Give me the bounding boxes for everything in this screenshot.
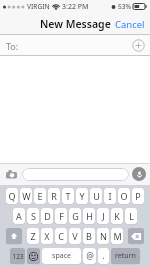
- button[interactable]: J: [97, 208, 109, 224]
- staticText: M: [113, 230, 122, 242]
- button[interactable]: M: [111, 228, 123, 244]
- staticText: 3:22 PM: [62, 2, 89, 12]
- button[interactable]: [128, 228, 144, 244]
- staticText: N: [100, 230, 107, 242]
- button[interactable]: X: [41, 228, 53, 244]
- button[interactable]: P: [132, 188, 144, 204]
- staticText: D: [44, 210, 51, 222]
- staticText: Cancel: [115, 18, 145, 31]
- button[interactable]: L: [125, 208, 137, 224]
- staticText: C: [58, 230, 64, 242]
- staticText: I: [108, 190, 112, 202]
- button[interactable]: [22, 168, 129, 181]
- button[interactable]: [6, 228, 22, 244]
- button[interactable]: F: [55, 208, 67, 224]
- staticText: G: [72, 210, 79, 222]
- button[interactable]: To:: [0, 35, 150, 56]
- button[interactable]: Cancel: [110, 13, 150, 35]
- staticText: Y: [79, 190, 85, 202]
- button[interactable]: U: [90, 188, 102, 204]
- button[interactable]: Y: [76, 188, 88, 204]
- staticText: J: [102, 210, 105, 222]
- button[interactable]: V: [69, 228, 81, 244]
- button[interactable]: E: [34, 188, 46, 204]
- staticText: A: [16, 210, 22, 222]
- staticText: To:: [6, 40, 19, 52]
- staticText: U: [93, 190, 100, 202]
- staticText: .: [102, 250, 105, 262]
- button[interactable]: A: [13, 208, 25, 224]
- button[interactable]: Add contact: [132, 39, 145, 52]
- staticText: @: [86, 250, 94, 262]
- button[interactable]: @: [83, 248, 96, 264]
- button[interactable]: space: [42, 248, 81, 264]
- button[interactable]: T: [62, 188, 74, 204]
- staticText: K: [114, 210, 120, 222]
- staticText: T: [65, 190, 71, 202]
- button[interactable]: [27, 248, 40, 264]
- staticText: E: [37, 190, 43, 202]
- staticText: VIRGIN: [27, 2, 50, 11]
- button[interactable]: D: [41, 208, 53, 224]
- button[interactable]: 123: [10, 248, 25, 264]
- staticText: space: [52, 251, 71, 261]
- staticText: 123: [12, 252, 24, 261]
- staticText: X: [44, 230, 50, 242]
- staticText: 53%: [118, 2, 131, 11]
- staticText: Z: [30, 230, 36, 242]
- staticText: Q: [8, 190, 16, 202]
- staticText: R: [51, 190, 57, 202]
- staticText: V: [72, 230, 78, 242]
- staticText: W: [22, 190, 31, 202]
- button[interactable]: W: [20, 188, 32, 204]
- button[interactable]: Z: [27, 228, 39, 244]
- staticText: P: [135, 190, 141, 202]
- staticText: L: [129, 210, 134, 222]
- staticText: O: [120, 190, 128, 202]
- button[interactable]: N: [97, 228, 109, 244]
- button[interactable]: R: [48, 188, 60, 204]
- button[interactable]: G: [69, 208, 81, 224]
- button[interactable]: B: [83, 228, 95, 244]
- button[interactable]: Record audio: [132, 167, 146, 181]
- button[interactable]: O: [118, 188, 130, 204]
- staticText: return: [115, 251, 136, 261]
- button[interactable]: Q: [6, 188, 18, 204]
- button[interactable]: .: [98, 248, 109, 264]
- staticText: B: [86, 230, 92, 242]
- button[interactable]: I: [104, 188, 116, 204]
- button[interactable]: K: [111, 208, 123, 224]
- staticText: F: [59, 210, 64, 222]
- staticText: S: [31, 210, 36, 222]
- button[interactable]: return: [111, 248, 140, 264]
- button[interactable]: C: [55, 228, 67, 244]
- button[interactable]: S: [27, 208, 39, 224]
- button[interactable]: H: [83, 208, 95, 224]
- staticText: New Message: [40, 17, 111, 31]
- staticText: H: [86, 210, 93, 222]
- button[interactable]: Camera: [4, 167, 19, 182]
